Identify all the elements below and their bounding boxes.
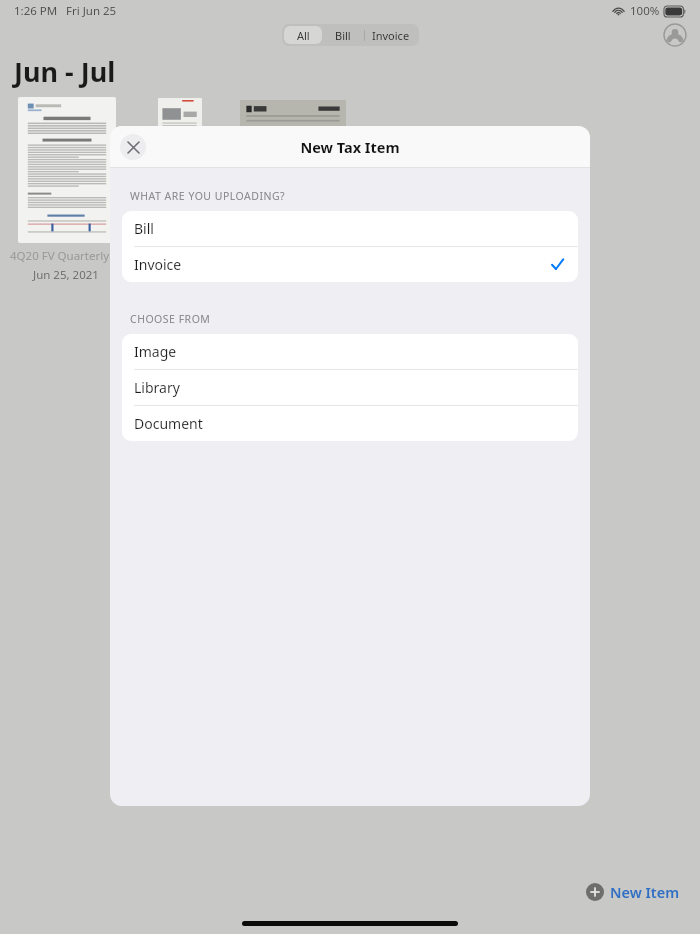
button[interactable]: [18, 97, 116, 243]
staticText: Document: [134, 414, 203, 433]
staticText: 1:26 PM: [14, 3, 58, 19]
staticText: WHAT ARE YOU UPLOADING?: [130, 189, 286, 203]
staticText: Fri Jun 25: [66, 3, 117, 19]
button[interactable]: Invoice: [122, 247, 578, 282]
button[interactable]: Image: [122, 334, 578, 370]
staticText: CHOOSE FROM: [130, 312, 211, 326]
button[interactable]: Library: [122, 370, 578, 406]
staticText: Image: [134, 342, 177, 361]
staticText: 100%: [630, 3, 660, 19]
button[interactable]: [158, 98, 202, 132]
button[interactable]: Add new item: [582, 878, 684, 906]
button[interactable]: Close: [120, 134, 146, 160]
staticText: Bill: [134, 219, 154, 238]
staticText: Library: [134, 378, 180, 397]
staticText: New Tax Item: [300, 137, 400, 157]
staticText: 4Q20 FV Quarterly Repo: [10, 248, 122, 264]
staticText: All: [297, 28, 310, 43]
staticText: Invoice: [134, 255, 182, 274]
staticText: Invoice: [372, 28, 410, 43]
button[interactable]: Bill: [122, 211, 578, 247]
button[interactable]: Invoice: [365, 26, 417, 44]
button[interactable]: Account: [662, 22, 688, 48]
button[interactable]: Bill: [322, 26, 364, 44]
button[interactable]: Document: [122, 406, 578, 441]
button[interactable]: [240, 100, 346, 136]
staticText: Jun - Jul: [14, 53, 116, 90]
other: Add new item: [586, 883, 604, 901]
staticText: Bill: [335, 28, 351, 43]
staticText: New Item: [610, 882, 680, 902]
staticText: Jun 25, 2021: [33, 267, 99, 283]
button[interactable]: All: [284, 26, 322, 44]
